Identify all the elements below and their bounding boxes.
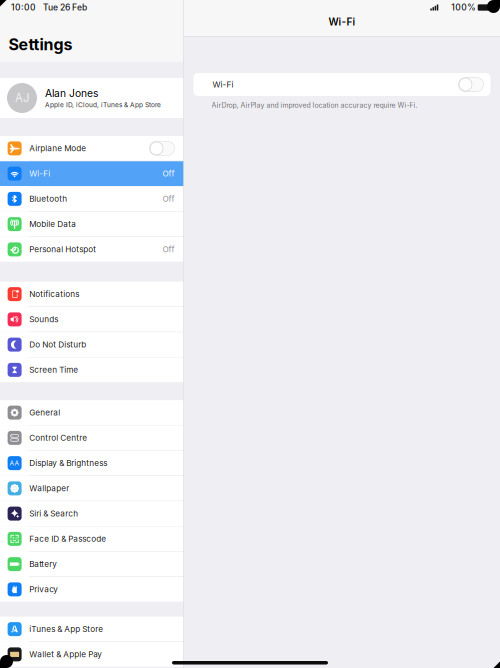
staticText: AA <box>10 459 20 467</box>
staticText: Mobile Data <box>29 219 76 229</box>
staticText: 100% <box>451 2 475 13</box>
button[interactable]: Personal Hotspot <box>0 237 183 262</box>
staticText: Personal Hotspot <box>29 244 96 254</box>
button[interactable]: AJ <box>0 78 183 118</box>
staticText: Notifications <box>29 289 79 299</box>
button[interactable]: Wi-Fi <box>193 73 490 96</box>
staticText: Airplane Mode <box>29 143 86 153</box>
button[interactable]: Wallpaper <box>0 476 183 501</box>
staticText: Wi-Fi <box>328 16 355 28</box>
staticText: Screen Time <box>29 365 78 375</box>
staticText: Control Centre <box>29 433 87 443</box>
staticText: Privacy <box>29 584 58 594</box>
button[interactable]: Do Not Disturb <box>0 332 183 357</box>
staticText: Siri & Search <box>29 509 78 518</box>
staticText: AJ <box>15 91 29 105</box>
staticText: 10:00 <box>11 2 36 13</box>
staticText: Face ID & Passcode <box>29 534 106 544</box>
button[interactable]: iTunes & App Store <box>0 617 183 642</box>
staticText: Bluetooth <box>29 194 67 204</box>
button[interactable]: Mobile Data <box>0 212 183 237</box>
staticText: iTunes & App Store <box>29 624 103 634</box>
staticText: General <box>29 408 60 417</box>
staticText: Alan Jones <box>45 87 98 99</box>
button[interactable]: General <box>0 400 183 425</box>
button[interactable]: Screen Time <box>0 357 183 382</box>
staticText: Display & Brightness <box>29 458 107 468</box>
button[interactable]: Sounds <box>0 307 183 332</box>
staticText: Off <box>162 194 174 204</box>
button[interactable]: Siri & Search <box>0 501 183 526</box>
staticText: Off <box>162 169 174 178</box>
staticText: Battery <box>29 559 57 569</box>
staticText: AirDrop, AirPlay and improved location a… <box>211 101 417 109</box>
button[interactable]: Battery <box>0 552 183 577</box>
button[interactable]: Wallet & Apple Pay <box>0 642 183 667</box>
staticText: Sounds <box>29 314 58 324</box>
staticText: Off <box>162 244 174 254</box>
staticText: Apple ID, iCloud, iTunes & App Store <box>45 101 161 109</box>
button[interactable]: Wi-Fi <box>0 161 183 186</box>
staticText: Tue 26 Feb <box>43 2 87 13</box>
button[interactable]: AA <box>0 451 183 476</box>
staticText: Wi-Fi <box>212 80 233 89</box>
button[interactable]: Privacy <box>0 577 183 602</box>
staticText: Do Not Disturb <box>29 340 86 349</box>
button[interactable]: Face ID & Passcode <box>0 526 183 551</box>
staticText: Wi-Fi <box>29 169 50 178</box>
button[interactable]: Bluetooth <box>0 186 183 211</box>
staticText: Wallpaper <box>29 483 69 493</box>
staticText: Settings <box>8 35 72 54</box>
staticText: Wallet & Apple Pay <box>29 649 102 659</box>
button[interactable]: Control Centre <box>0 425 183 450</box>
button[interactable]: Notifications <box>0 282 183 307</box>
button[interactable]: Airplane Mode <box>0 136 183 161</box>
